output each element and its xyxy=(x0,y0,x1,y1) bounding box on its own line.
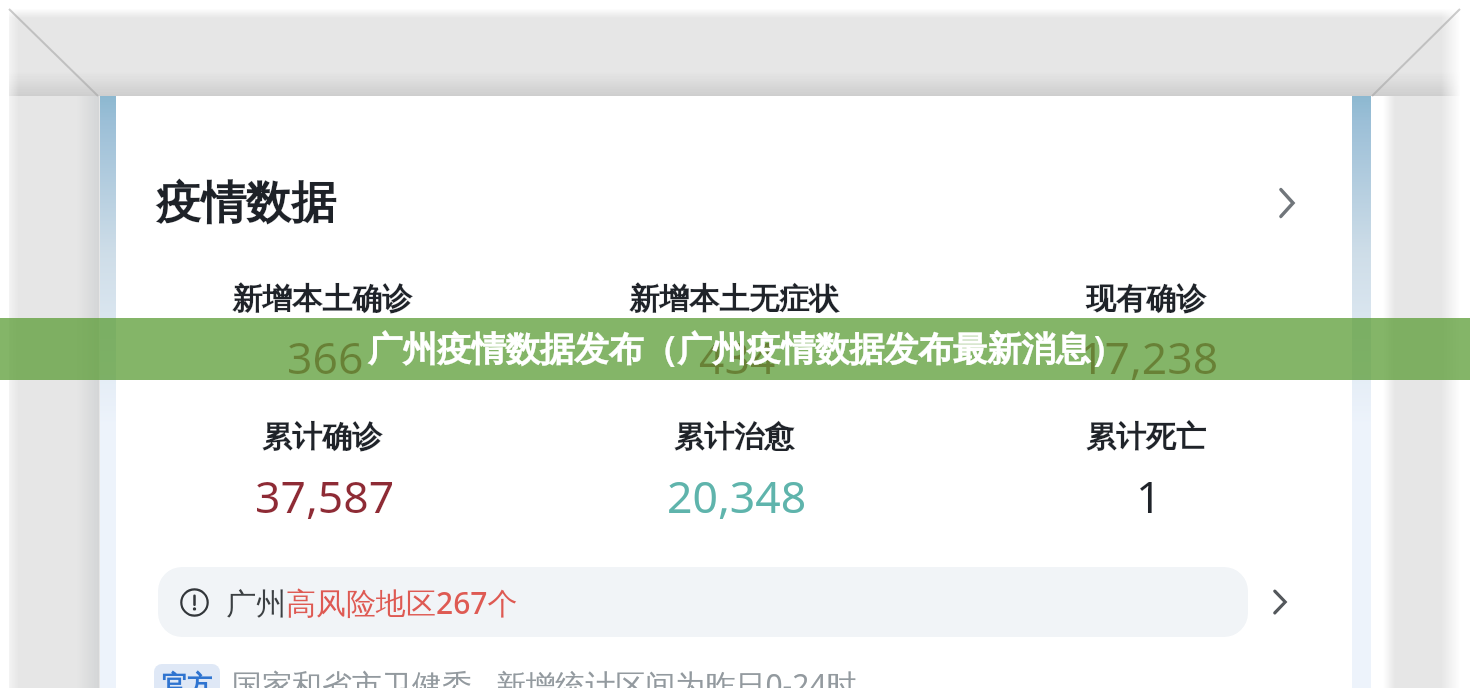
staticText: 1 xyxy=(1136,465,1162,526)
staticText: 累计确诊 xyxy=(262,418,382,456)
staticText: 广州疫情数据发布（广州疫情数据发布最新消息） xyxy=(368,328,1125,371)
button[interactable]: 查看更多疫情数据 xyxy=(1259,175,1315,231)
staticText: 国家和省市卫健委 新增统计区间为昨日0-24时 xyxy=(232,664,857,688)
staticText: 20,348 xyxy=(667,465,807,526)
staticText: 累计治愈 xyxy=(674,418,794,456)
staticText: 累计死亡 xyxy=(1086,418,1206,456)
staticText: 37,587 xyxy=(255,465,395,526)
staticText: 新增本土确诊 xyxy=(232,280,412,318)
button[interactable]: 广州高风险地区267个 xyxy=(158,567,1248,637)
button[interactable]: 查看高风险地区 xyxy=(1247,569,1313,635)
staticText: 434 xyxy=(699,326,776,387)
staticText: 广州高风险地区267个 xyxy=(226,582,518,623)
staticText: 现有确诊 xyxy=(1086,280,1206,318)
staticText: 疫情数据 xyxy=(156,175,336,232)
staticText: 366 xyxy=(287,326,364,387)
staticText: 17,238 xyxy=(1079,326,1219,387)
staticText: 新增本土无症状 xyxy=(629,280,839,318)
staticText: 官方 xyxy=(162,669,212,688)
